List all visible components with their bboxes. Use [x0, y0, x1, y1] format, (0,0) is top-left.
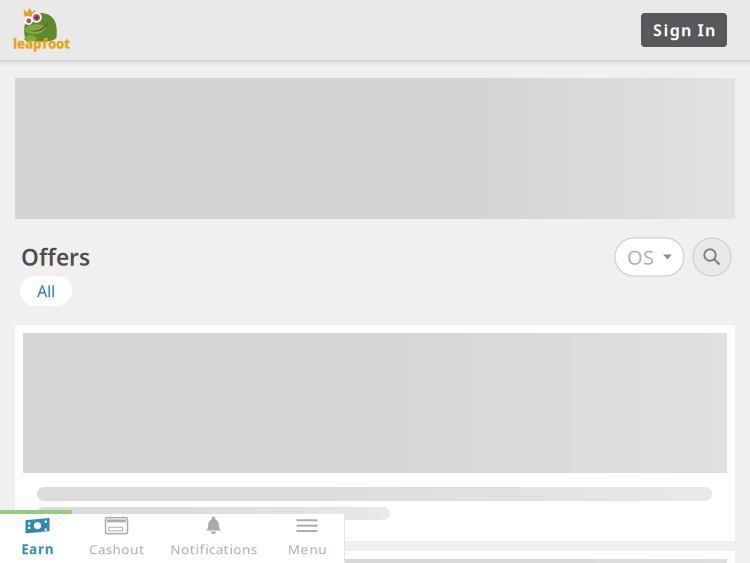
staticText: leapfoot	[13, 35, 70, 52]
button[interactable]: Cashout	[89, 509, 144, 563]
button[interactable]: Menu	[288, 509, 326, 563]
staticText: Cashout	[89, 540, 144, 558]
button[interactable]: Earn	[21, 509, 54, 563]
staticText: Offers	[21, 242, 90, 272]
button[interactable]: Sign In	[641, 13, 727, 47]
staticText: All	[37, 280, 55, 302]
staticText: Earn	[21, 540, 54, 558]
staticText: Sign In	[653, 19, 715, 41]
staticText: Notifications	[170, 540, 257, 558]
button[interactable]: OS	[615, 238, 684, 276]
staticText: Menu	[288, 540, 326, 558]
staticText: OS	[627, 244, 654, 270]
button[interactable]: All	[20, 276, 72, 306]
button[interactable]: Search	[693, 238, 731, 276]
button[interactable]: Notifications	[170, 509, 257, 563]
